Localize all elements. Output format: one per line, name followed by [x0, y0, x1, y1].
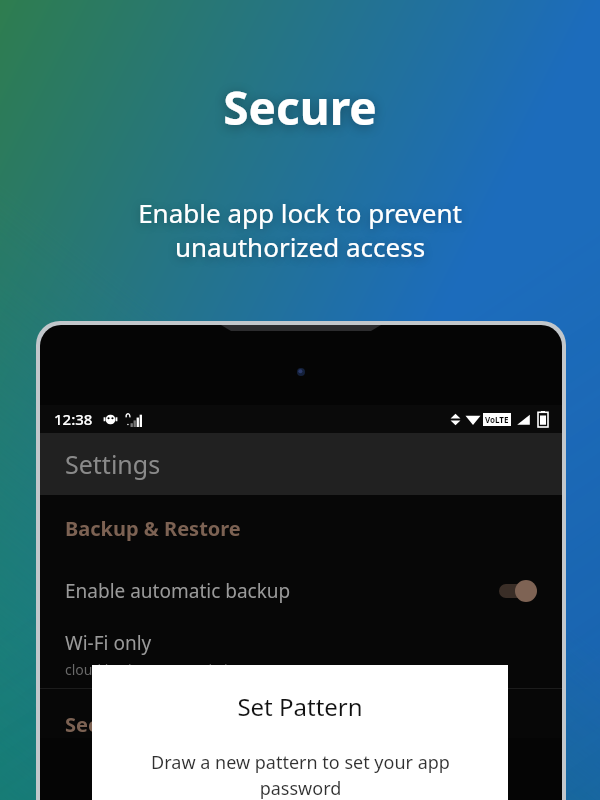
other: Cellular	[516, 412, 531, 427]
staticText: Settings	[65, 447, 161, 481]
other: Android	[103, 412, 118, 427]
staticText: Draw a new pattern to set your app passw…	[151, 750, 450, 800]
staticText: VoLTE	[485, 414, 509, 425]
staticText: 12:38	[54, 409, 93, 429]
staticText: cloud backups over Wi-Fi	[65, 660, 228, 679]
staticText: Security	[65, 711, 147, 738]
other: Signal	[126, 412, 141, 427]
button[interactable]: Enable automatic backup	[40, 568, 562, 614]
other: Wi-Fi	[465, 411, 481, 427]
staticText: Enable app lock to prevent unauthorized …	[138, 195, 462, 264]
other: Battery	[538, 411, 548, 427]
button[interactable]: Settings	[40, 433, 562, 495]
button[interactable]: Wi-Fi only	[40, 628, 562, 680]
staticText: Enable automatic backup	[65, 578, 291, 604]
staticText: Wi-Fi only	[65, 630, 152, 656]
other: Data	[449, 413, 462, 426]
staticText: Set Pattern	[237, 690, 363, 723]
staticText: Secure	[223, 76, 377, 139]
button[interactable]: Set Pattern	[92, 665, 508, 800]
staticText: Backup & Restore	[65, 515, 241, 542]
